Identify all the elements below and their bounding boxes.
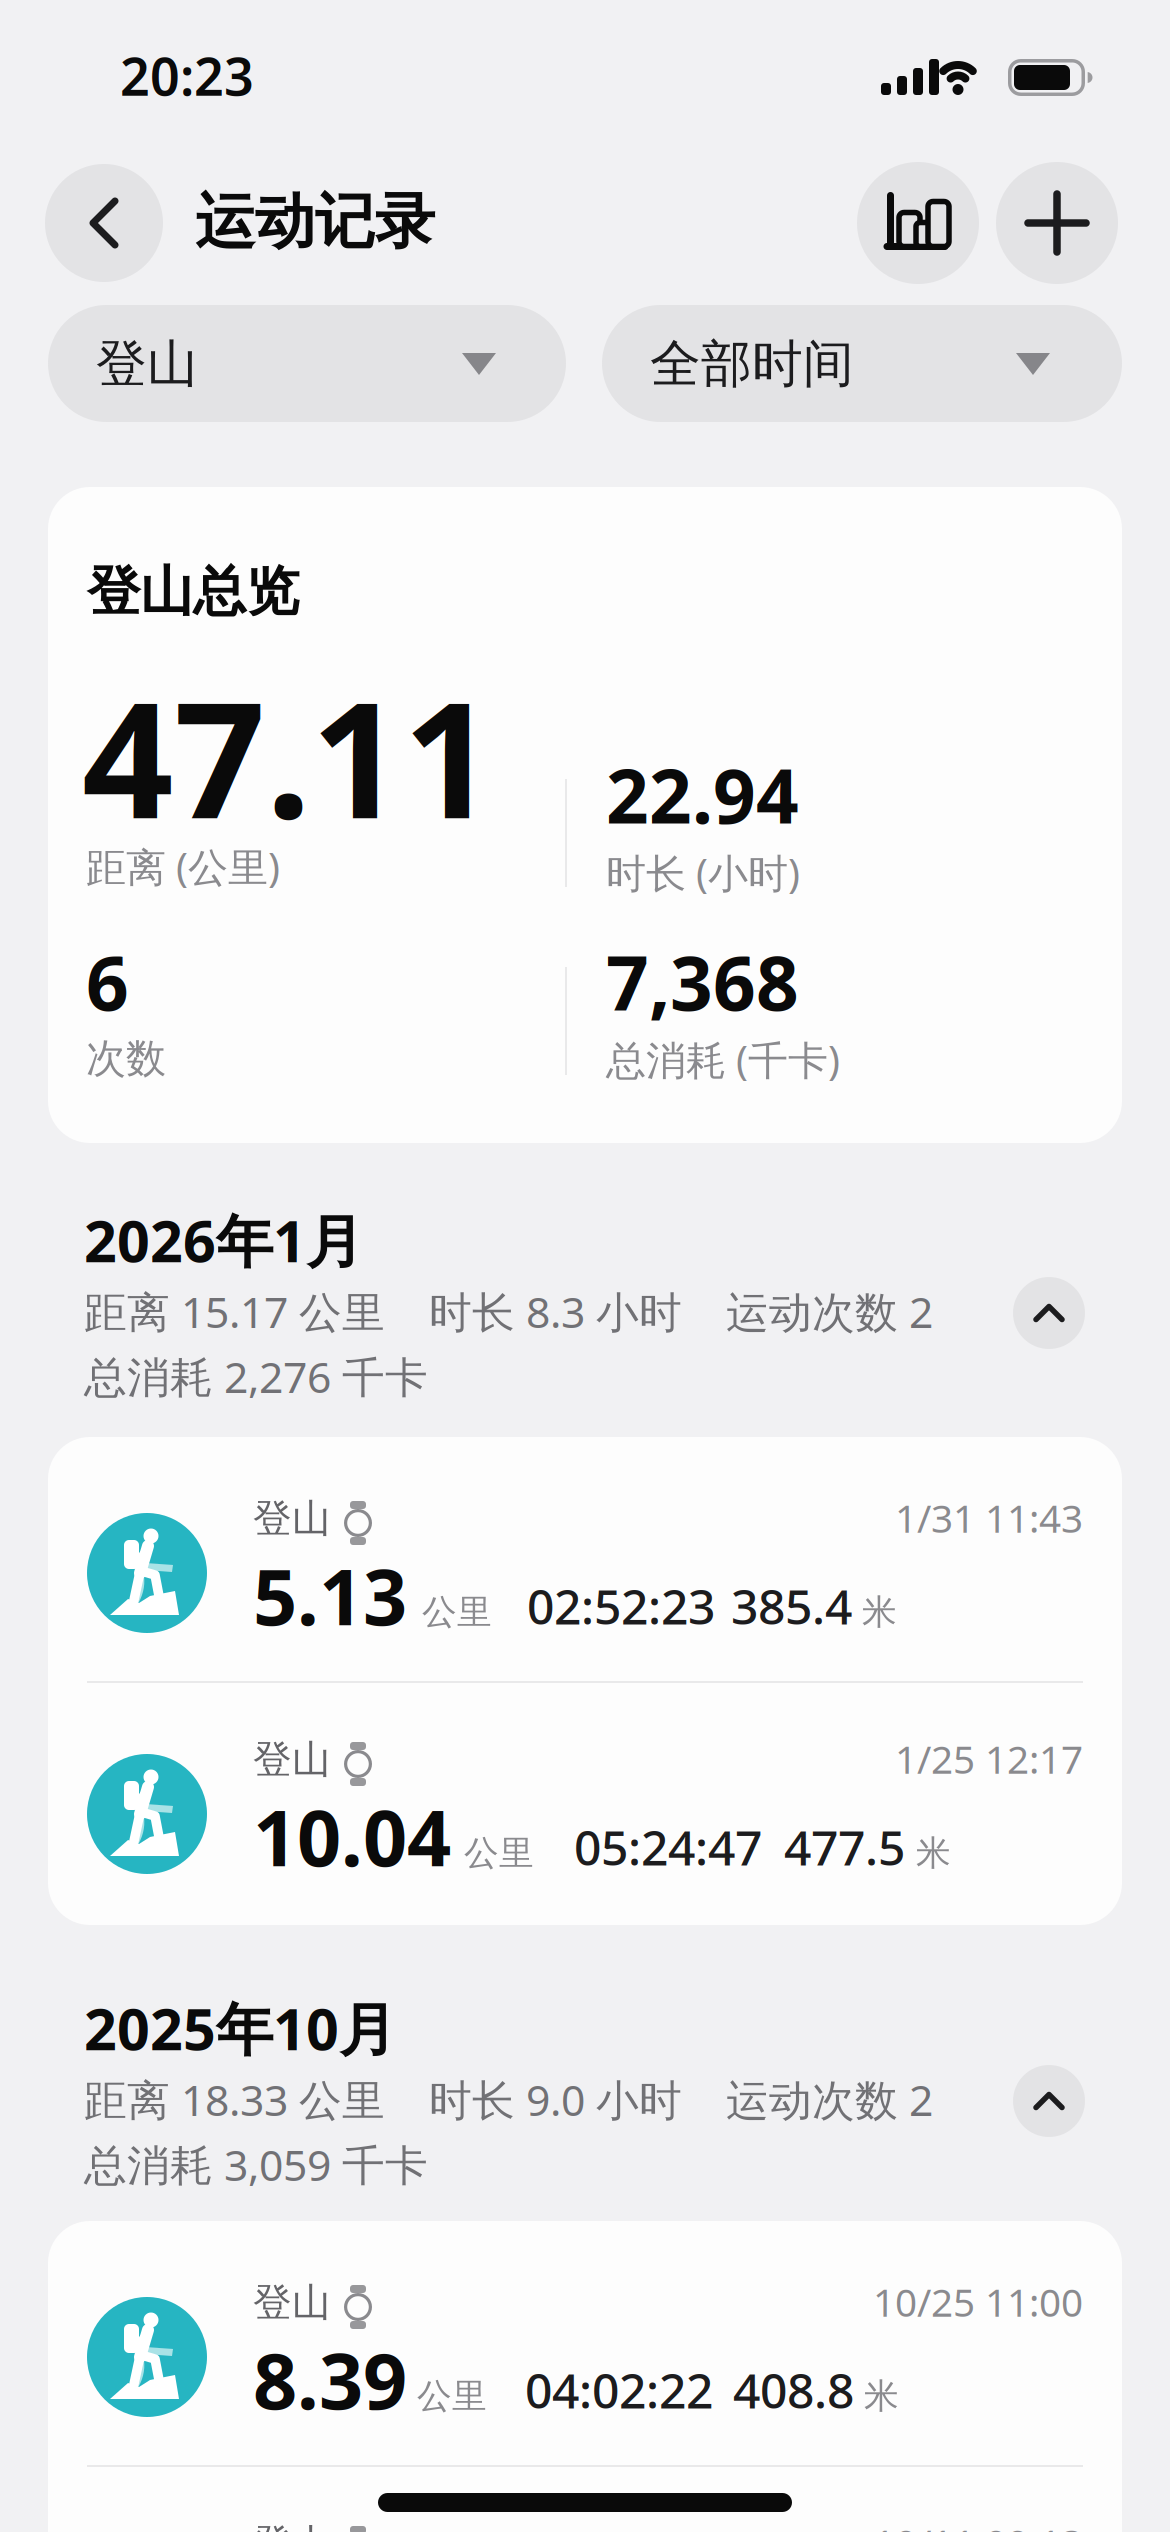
staticText: 10/11 09:13 — [873, 2517, 1083, 2532]
staticText: 登山 — [253, 2520, 331, 2532]
staticText: 05:24:47 — [574, 1815, 762, 1879]
staticText: 10.04 — [253, 1785, 451, 1888]
button[interactable]: 收起 — [1013, 1277, 1085, 1349]
staticText: 登山 — [253, 2279, 331, 2326]
staticText: 04:02:22 — [525, 2358, 713, 2422]
staticText: 登山 — [253, 1495, 331, 1542]
staticText: 10/25 11:00 — [873, 2276, 1083, 2327]
button[interactable]: 登山 — [48, 2221, 1122, 2463]
staticText: 20:23 — [120, 41, 254, 110]
button[interactable]: 登山 — [48, 305, 566, 422]
staticText: 米 — [864, 2375, 899, 2418]
staticText: 2025年10月 — [84, 1990, 396, 2066]
staticText: 登山 — [253, 1736, 331, 1783]
staticText: 公里 — [417, 2375, 487, 2418]
staticText: 总消耗 (千卡) — [606, 1033, 840, 1086]
staticText: 8.39 — [253, 2328, 407, 2431]
staticText: 5.13 — [253, 1544, 407, 1647]
staticText: 公里 — [422, 1591, 492, 1634]
staticText: 登山总览 — [87, 559, 299, 624]
button[interactable]: 全部时间 — [602, 305, 1122, 422]
button[interactable]: 登山 — [48, 1678, 1122, 1920]
staticText: 米 — [916, 1832, 951, 1875]
staticText: 时长 9.0 小时 — [429, 2071, 682, 2128]
staticText: 22.94 — [606, 745, 799, 844]
button[interactable]: 返回 — [45, 164, 163, 282]
staticText: 2026年1月 — [84, 1202, 363, 1278]
button[interactable]: 登山 — [48, 1437, 1122, 1679]
staticText: 02:52:23 — [527, 1574, 715, 1638]
staticText: 距离 (公里) — [86, 840, 280, 893]
staticText: 总消耗 2,276 千卡 — [84, 1348, 428, 1405]
staticText: 7,368 — [606, 932, 799, 1031]
staticText: 时长 8.3 小时 — [429, 1283, 682, 1340]
staticText: 总消耗 3,059 千卡 — [84, 2136, 428, 2193]
staticText: 次数 — [86, 1034, 166, 1083]
staticText: 米 — [862, 1591, 897, 1634]
staticText: 登山 — [96, 333, 198, 395]
button[interactable]: 添加运动 — [996, 162, 1118, 284]
staticText: 距离 15.17 公里 — [84, 1283, 385, 1340]
staticText: 1/31 11:43 — [895, 1492, 1083, 1543]
button[interactable]: 收起 — [1013, 2065, 1085, 2137]
button[interactable]: 统计图表 — [857, 162, 979, 284]
staticText: 公里 — [464, 1832, 534, 1875]
staticText: 运动次数 2 — [726, 2071, 933, 2128]
staticText: 距离 18.33 公里 — [84, 2071, 385, 2128]
staticText: 时长 (小时) — [606, 846, 800, 899]
staticText: 运动次数 2 — [726, 1283, 933, 1340]
staticText: 1/25 12:17 — [895, 1733, 1083, 1784]
staticText: 运动记录 — [195, 185, 435, 259]
staticText: 477.5 — [784, 1815, 905, 1879]
staticText: 全部时间 — [650, 333, 854, 395]
staticText: 408.8 — [733, 2358, 854, 2422]
staticText: 6 — [86, 932, 129, 1031]
staticText: 385.4 — [731, 1574, 852, 1638]
staticText: 47.11 — [82, 650, 495, 862]
